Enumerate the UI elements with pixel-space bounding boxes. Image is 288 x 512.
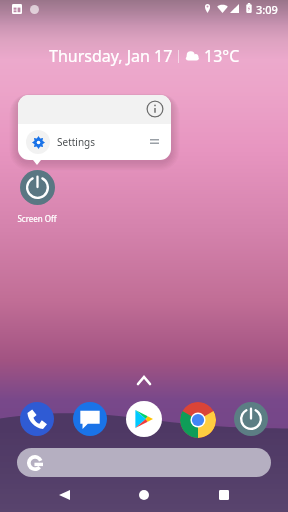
button[interactable]: Search [17, 448, 271, 477]
button[interactable]: Thursday, Jan 17 [49, 45, 240, 67]
staticText: 3:09 [256, 2, 278, 17]
button[interactable]: Settings [18, 124, 171, 160]
button[interactable]: Phone [20, 402, 54, 436]
button[interactable]: Open app drawer [137, 376, 151, 385]
button[interactable]: Home [130, 481, 158, 508]
button[interactable]: Play Store [126, 401, 162, 437]
button[interactable]: Screen Off [2, 170, 72, 224]
button[interactable]: Chrome [180, 402, 216, 438]
button[interactable]: Screen Off [234, 402, 268, 436]
staticText: 13°C [204, 45, 240, 67]
staticText: Screen Off [17, 213, 57, 224]
button[interactable]: App info [146, 100, 164, 118]
staticText: Settings [57, 135, 96, 149]
button[interactable]: Back [50, 481, 78, 508]
button[interactable]: Recents [210, 481, 238, 508]
button[interactable]: Messages [73, 402, 107, 436]
button[interactable]: App info [18, 95, 171, 124]
staticText: Thursday, Jan 17 [49, 45, 173, 67]
